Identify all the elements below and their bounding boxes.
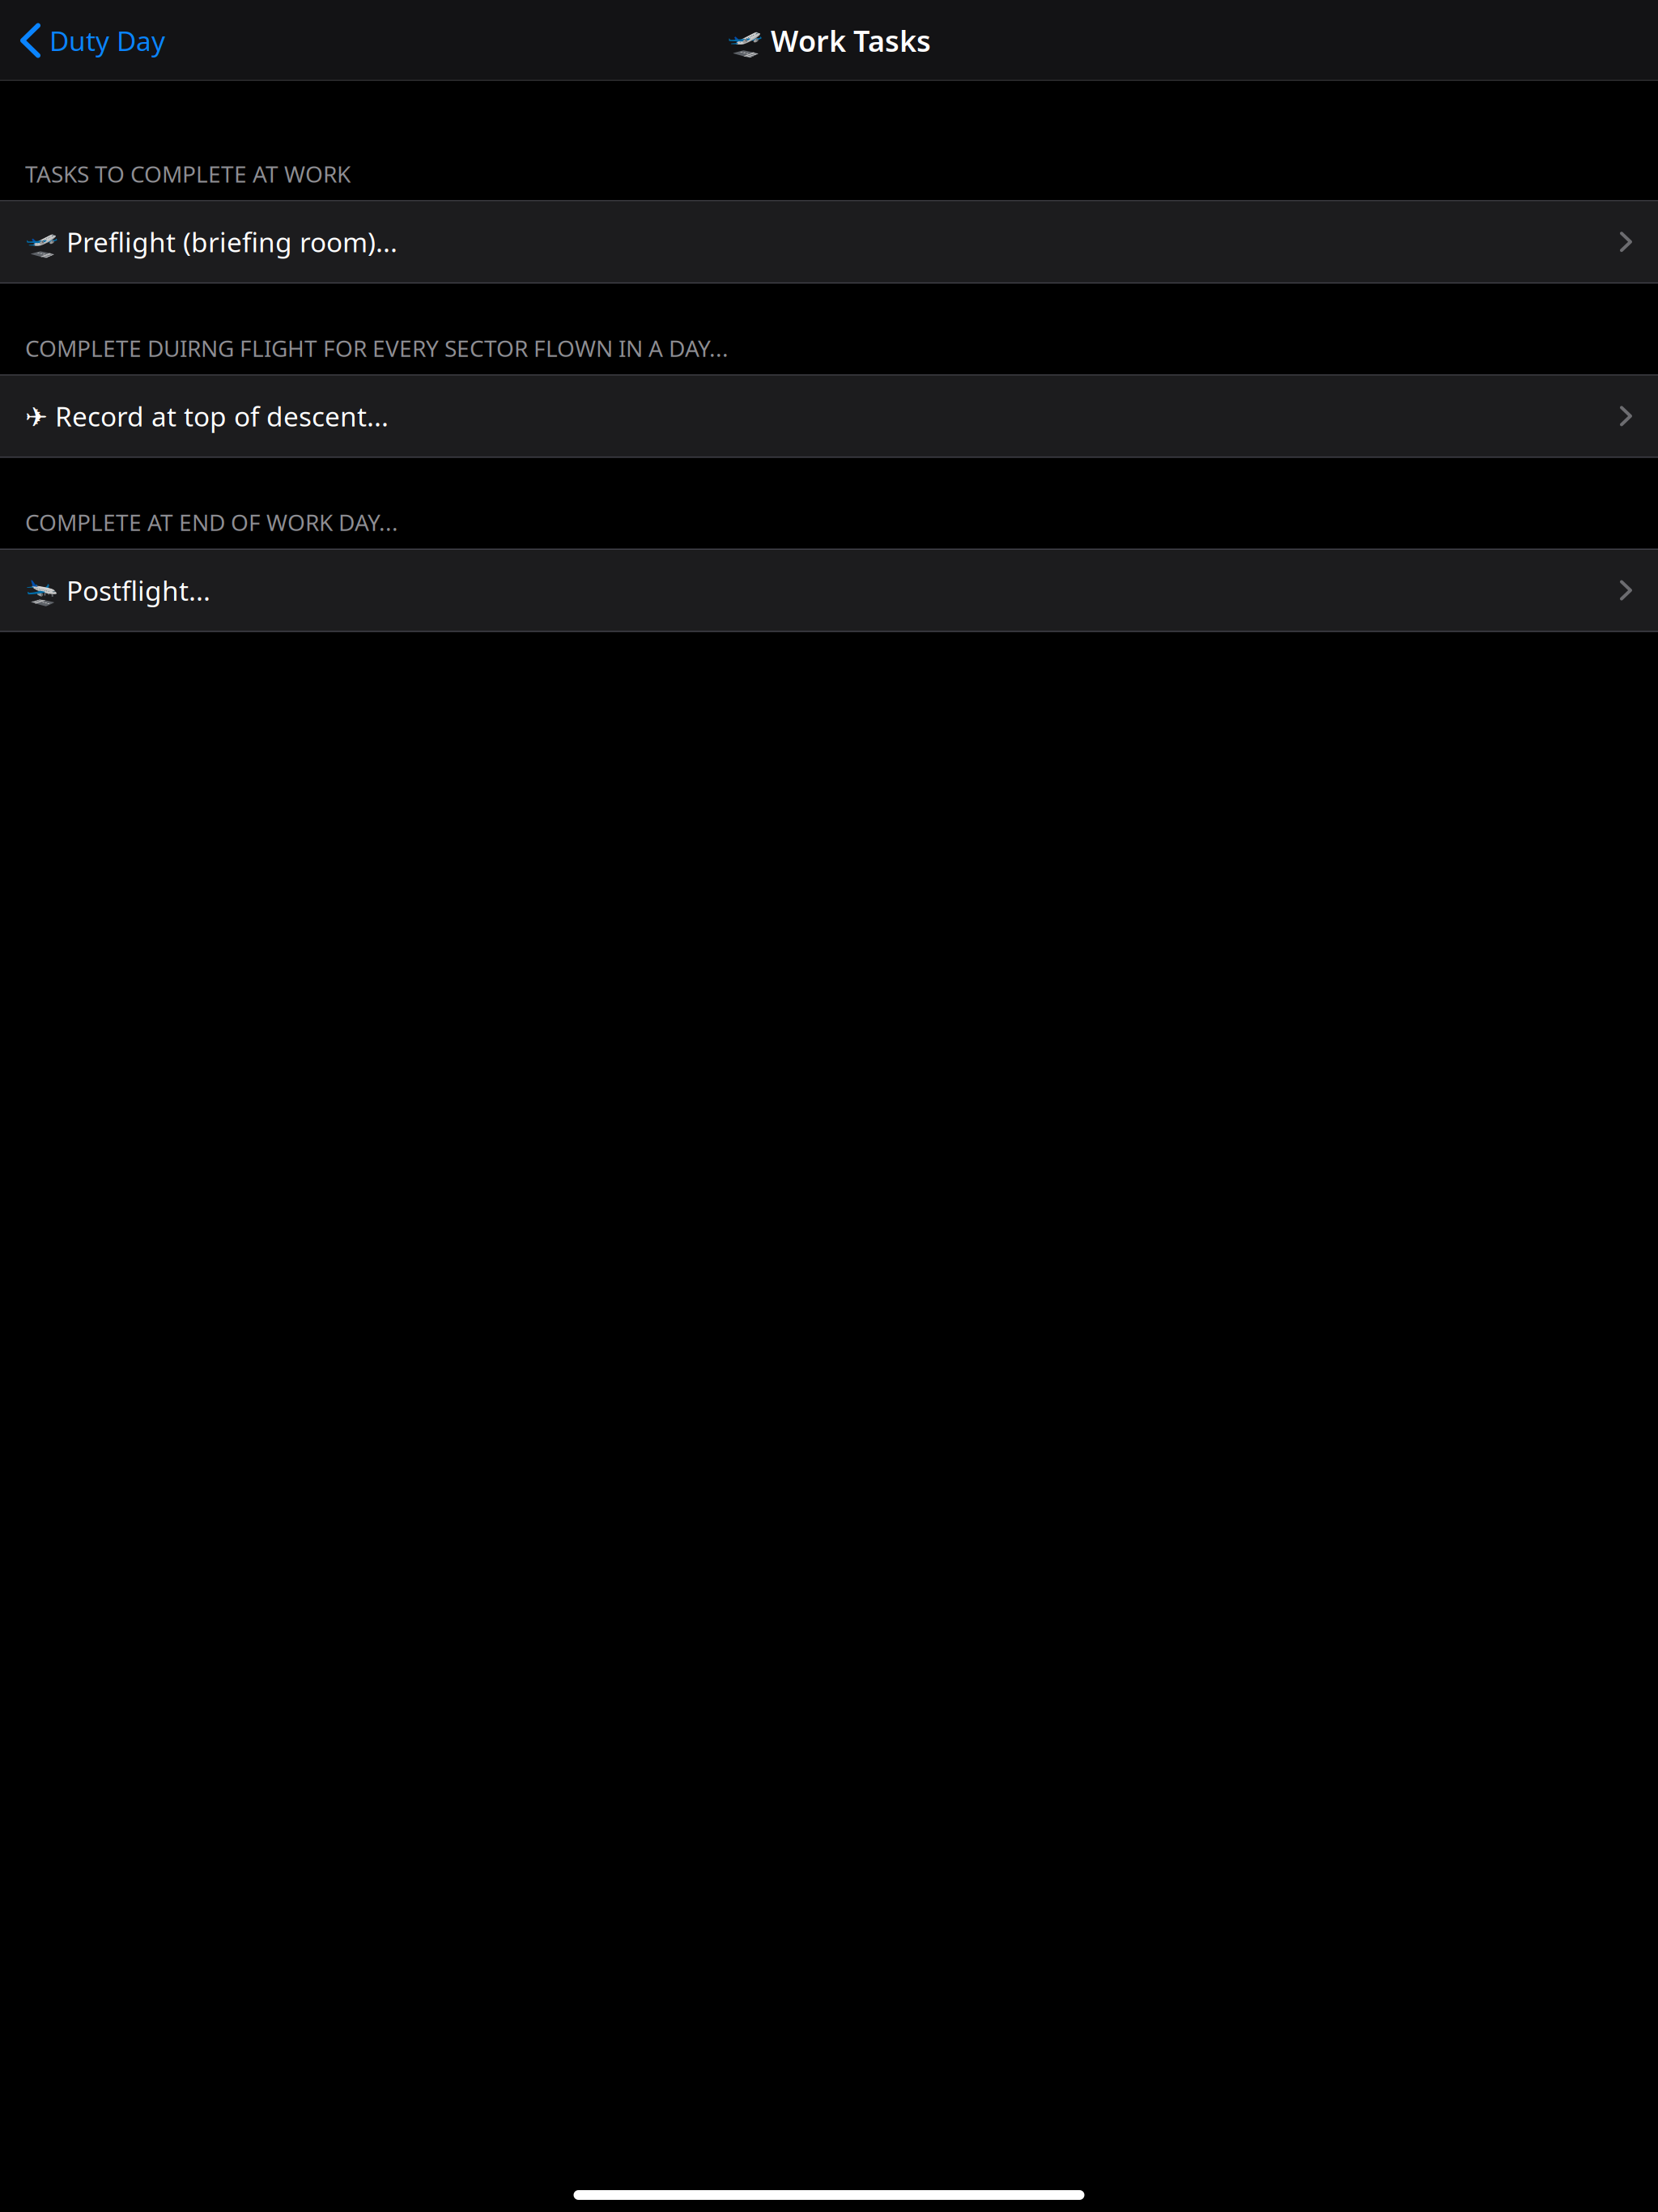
button[interactable]: ✈ Record at top of descent...: [0, 374, 1658, 458]
button[interactable]: Back to Duty Day: [0, 0, 180, 81]
staticText: Duty Day: [49, 23, 165, 58]
button[interactable]: 🛬 Postflight...: [0, 549, 1658, 632]
button[interactable]: 🛫 Preflight (briefing room)...: [0, 200, 1658, 284]
staticText: COMPLETE DUIRNG FLIGHT FOR EVERY SECTOR …: [25, 333, 729, 363]
staticText: 🛫 Work Tasks: [727, 21, 931, 60]
staticText: 🛫 Preflight (briefing room)...: [25, 224, 397, 260]
staticText: COMPLETE AT END OF WORK DAY...: [25, 507, 398, 537]
staticText: 🛬 Postflight...: [25, 572, 210, 608]
staticText: TASKS TO COMPLETE AT WORK: [25, 159, 351, 189]
staticText: ✈ Record at top of descent...: [25, 398, 389, 434]
